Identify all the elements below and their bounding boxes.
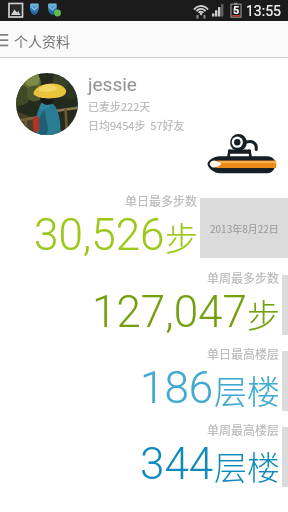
staticText: 127,047 [92,286,247,338]
staticText: 个人资料 [14,31,70,51]
staticText: 13:55 [246,3,281,19]
staticText: 层楼 [214,442,280,490]
staticText: 单周最高楼层 [207,421,280,438]
button[interactable]: Open navigation menu [0,21,12,58]
button[interactable]: Profile photo [16,73,78,135]
staticText: 单日最高楼层 [207,345,280,362]
button[interactable]: 单日最多步数 [0,192,198,261]
staticText: 30,526 [34,209,165,261]
staticText: 已麦步222天 [88,98,151,114]
button[interactable]: 单日最高楼层 [0,345,280,414]
staticText: 单周最多步数 [207,269,280,286]
staticText: 步 [247,290,280,338]
staticText: 186 [140,362,214,414]
button[interactable]: 2013年8月22日 [200,198,288,258]
staticText: 344 [140,438,214,490]
button[interactable]: Profile photo [0,59,288,141]
staticText: 日均9454步 57好友 [88,117,185,133]
staticText: 5 [233,4,240,17]
staticText: 步 [165,213,198,261]
button[interactable]: 单周最高楼层 [0,421,280,490]
staticText: 单日最多步数 [125,192,198,209]
button[interactable]: Mascot [203,131,277,177]
staticText: jessie [88,73,137,95]
staticText: 2013年8月22日 [210,221,279,235]
button[interactable]: 单周最多步数 [0,269,280,338]
staticText: 层楼 [214,366,280,414]
